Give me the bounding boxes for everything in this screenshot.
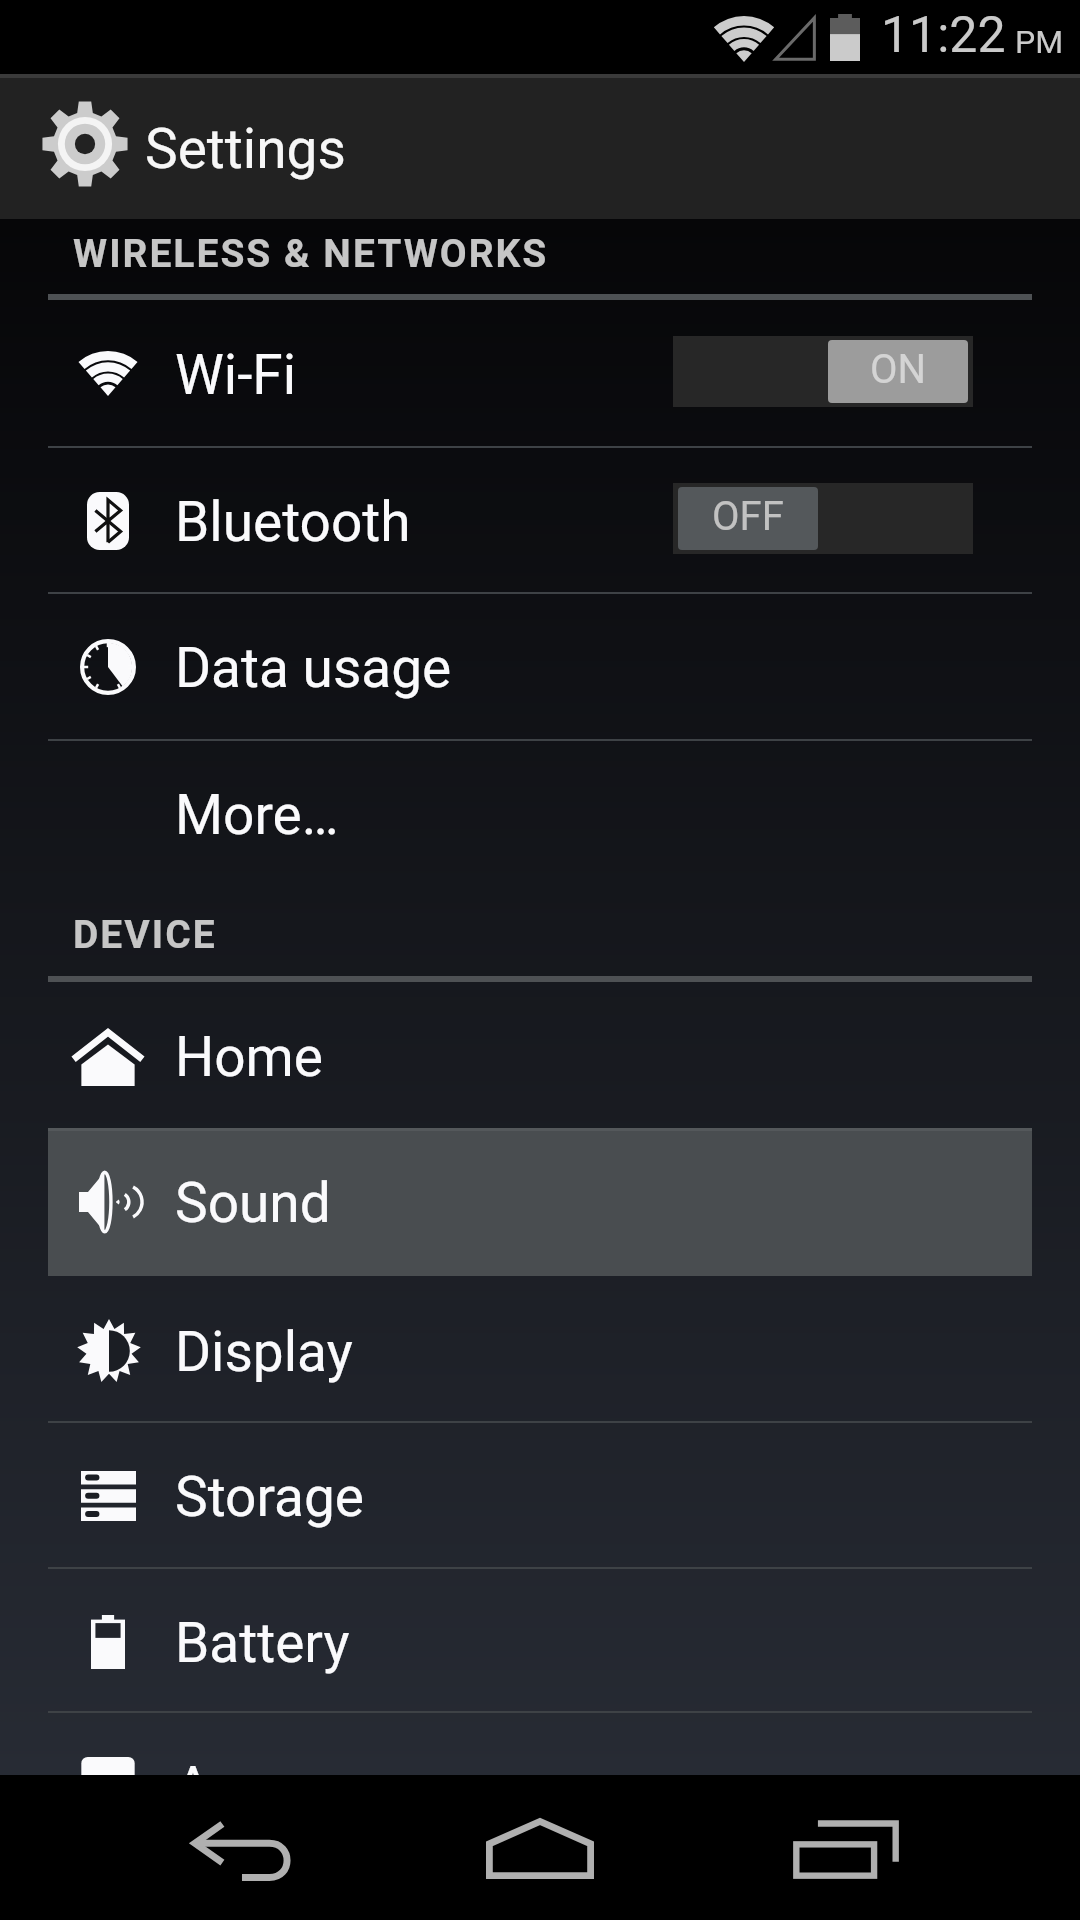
button[interactable]: More…	[0, 740, 1080, 887]
staticText: WIRELESS & NETWORKS	[73, 231, 549, 277]
button[interactable]: Battery	[0, 1568, 1080, 1715]
staticText: Battery	[175, 1611, 350, 1675]
button[interactable]: Sound	[0, 1128, 1080, 1275]
button[interactable]: Recent apps	[756, 1775, 936, 1920]
staticText: OFF	[712, 493, 784, 540]
staticText: Bluetooth	[175, 490, 411, 554]
staticText: DEVICE	[73, 912, 217, 958]
button[interactable]: Home	[0, 982, 1080, 1129]
staticText: Data usage	[175, 636, 452, 700]
button[interactable]: Storage	[0, 1422, 1080, 1569]
staticText: Display	[175, 1320, 353, 1384]
staticText: PM	[1015, 23, 1064, 61]
button[interactable]: Apps	[0, 1712, 1080, 1859]
button[interactable]: Home	[450, 1775, 630, 1920]
button[interactable]: Bluetooth	[0, 447, 1080, 594]
button[interactable]: OFF	[673, 483, 973, 554]
button[interactable]: Display	[0, 1277, 1080, 1424]
staticText: Settings	[145, 117, 346, 181]
staticText: Wi-Fi	[175, 343, 297, 407]
button[interactable]: Back	[150, 1775, 330, 1920]
staticText: More…	[175, 783, 339, 847]
staticText: Apps	[175, 1755, 302, 1819]
staticText: Sound	[175, 1171, 331, 1235]
staticText: Storage	[175, 1465, 365, 1529]
staticText: 11:22	[881, 6, 1006, 65]
button[interactable]: Data usage	[0, 593, 1080, 740]
button[interactable]: ON	[673, 336, 973, 407]
button[interactable]: Settings	[0, 74, 1080, 219]
button[interactable]: Wi-Fi	[0, 300, 1080, 447]
staticText: ON	[870, 346, 927, 393]
staticText: Home	[175, 1025, 324, 1089]
